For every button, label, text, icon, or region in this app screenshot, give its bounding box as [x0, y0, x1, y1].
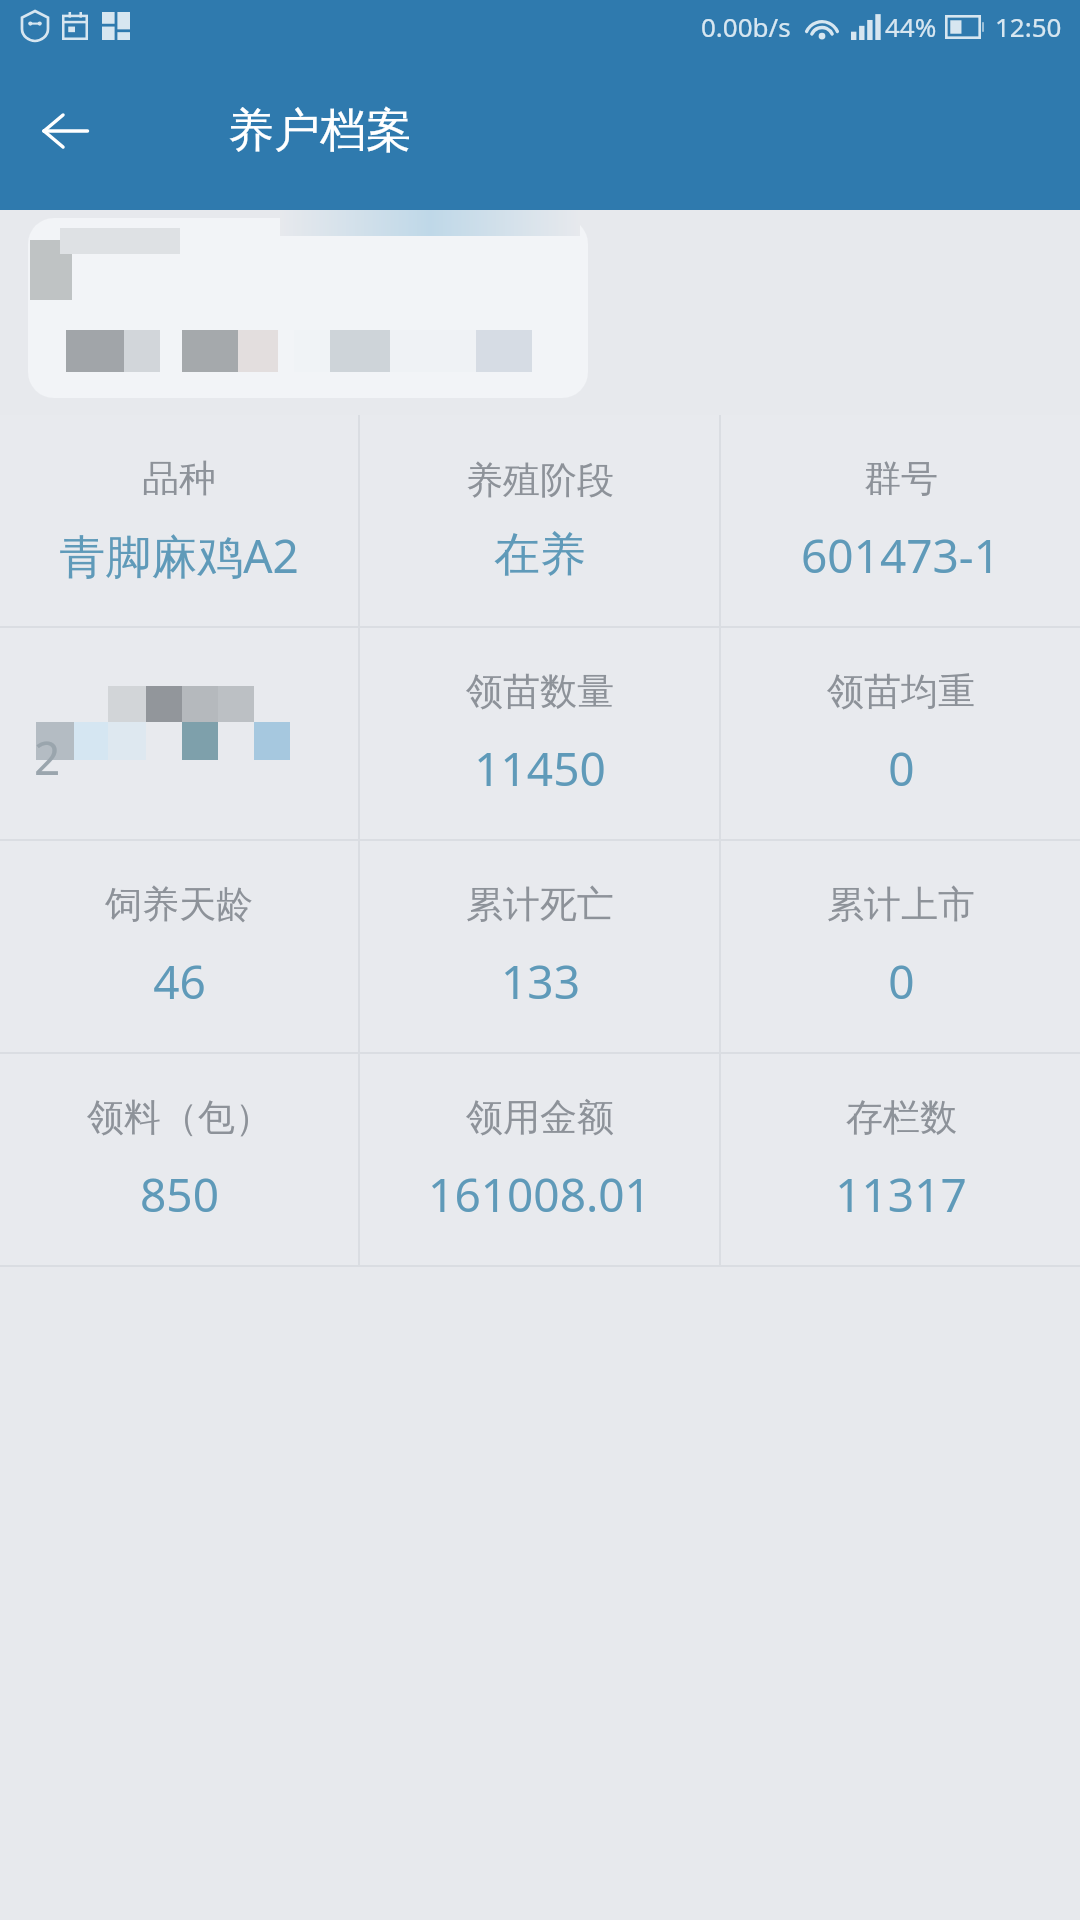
staticText: 46	[153, 950, 206, 1013]
staticText: 在养	[494, 526, 586, 584]
staticText: 饲养天龄	[105, 881, 253, 928]
staticText: 领用金额	[466, 1094, 614, 1141]
staticText: 161008.01	[428, 1163, 651, 1226]
button[interactable]: 2	[0, 628, 358, 839]
button[interactable]: 群号	[721, 415, 1080, 626]
staticText: 2	[34, 726, 61, 789]
staticText: 133	[501, 950, 580, 1013]
staticText: 领苗均重	[827, 668, 975, 715]
button[interactable]: 领用金额	[360, 1054, 719, 1265]
staticText: 12:50	[995, 9, 1062, 44]
staticText: 0.00b/s	[701, 9, 791, 44]
staticText: 品种	[142, 455, 216, 502]
staticText: 11450	[474, 737, 606, 800]
staticText: 累计死亡	[466, 881, 614, 928]
staticText: 601473-1	[801, 524, 1000, 587]
button[interactable]: 领料（包）	[0, 1054, 358, 1265]
staticText: 0	[888, 737, 915, 800]
button[interactable]: 累计上市	[721, 841, 1080, 1052]
staticText: 领苗数量	[466, 668, 614, 715]
button[interactable]: 领苗数量	[360, 628, 719, 839]
button[interactable]: 养殖阶段	[360, 415, 719, 626]
staticText: 群号	[864, 455, 938, 502]
staticText: 44%	[885, 9, 937, 44]
staticText: 850	[140, 1163, 219, 1226]
button[interactable]: 存栏数	[721, 1054, 1080, 1265]
button[interactable]: Back	[22, 88, 108, 174]
button[interactable]: 领苗均重	[721, 628, 1080, 839]
staticText: 养殖阶段	[466, 457, 614, 504]
staticText: 0	[888, 950, 915, 1013]
staticText: 11317	[835, 1163, 967, 1226]
staticText: 存栏数	[846, 1094, 957, 1141]
button[interactable]: 累计死亡	[360, 841, 719, 1052]
staticText: 领料（包）	[87, 1094, 272, 1141]
button[interactable]: 品种	[0, 415, 358, 626]
staticText: 养户档案	[228, 102, 412, 160]
staticText: 累计上市	[827, 881, 975, 928]
staticText: 青脚麻鸡A2	[59, 524, 299, 587]
button[interactable]: 饲养天龄	[0, 841, 358, 1052]
